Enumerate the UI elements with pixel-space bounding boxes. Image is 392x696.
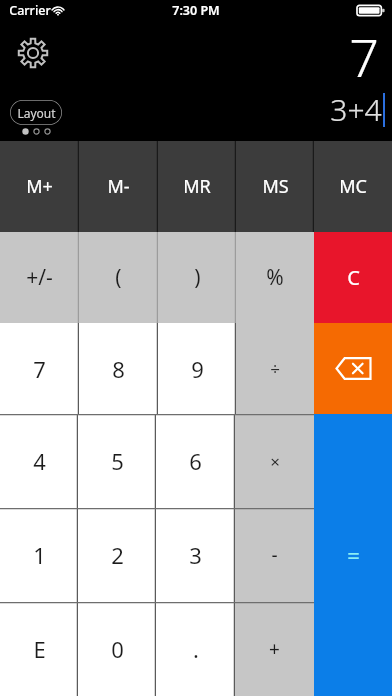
button[interactable]: 9 <box>158 323 236 414</box>
staticText: 7 <box>349 21 379 92</box>
staticText: Layout <box>17 105 56 121</box>
staticText: Carrier <box>9 2 51 19</box>
button[interactable]: = <box>314 414 392 696</box>
staticText: C <box>347 264 360 291</box>
staticText: 6 <box>189 446 202 476</box>
staticText: % <box>266 263 284 292</box>
staticText: - <box>271 542 278 568</box>
staticText: 7:30 PM <box>172 2 220 19</box>
button[interactable]: 0 <box>78 602 156 696</box>
button[interactable]: +/- <box>0 232 79 323</box>
button[interactable]: Backspace <box>314 323 392 414</box>
button[interactable]: E <box>0 602 78 696</box>
button[interactable]: 3 <box>156 508 235 602</box>
button[interactable]: Settings <box>12 32 54 74</box>
staticText: 5 <box>111 446 124 476</box>
staticText: ) <box>194 263 201 292</box>
button[interactable]: MS <box>236 141 314 232</box>
button[interactable]: ( <box>79 232 158 323</box>
staticText: 8 <box>112 354 125 384</box>
staticText: × <box>270 450 280 473</box>
staticText: 2 <box>111 540 124 570</box>
button[interactable]: M- <box>79 141 158 232</box>
staticText: 9 <box>191 354 204 384</box>
button[interactable]: . <box>156 602 235 696</box>
button[interactable]: 1 <box>0 508 78 602</box>
button[interactable]: 5 <box>78 414 156 508</box>
button[interactable]: 4 <box>0 414 78 508</box>
button[interactable]: + <box>235 602 314 696</box>
staticText: +/- <box>26 263 53 292</box>
button[interactable]: ÷ <box>236 323 314 414</box>
staticText: 3 <box>189 540 202 570</box>
staticText: MR <box>183 174 211 199</box>
button[interactable]: MR <box>158 141 236 232</box>
staticText: 7 <box>33 354 46 384</box>
button[interactable]: 8 <box>79 323 158 414</box>
button[interactable]: - <box>235 508 314 602</box>
staticText: 3+4 <box>330 89 382 130</box>
staticText: M- <box>107 174 130 199</box>
staticText: M+ <box>26 174 53 199</box>
button[interactable]: % <box>236 232 314 323</box>
staticText: 4 <box>33 446 46 476</box>
button[interactable]: 6 <box>156 414 235 508</box>
staticText: = <box>347 540 360 570</box>
staticText: ÷ <box>270 357 280 380</box>
staticText: MC <box>339 174 367 199</box>
button[interactable]: M+ <box>0 141 79 232</box>
staticText: . <box>193 634 199 664</box>
staticText: MS <box>262 174 289 199</box>
staticText: ( <box>115 263 122 292</box>
staticText: 0 <box>111 634 124 664</box>
staticText: + <box>269 636 280 662</box>
button[interactable]: ) <box>158 232 236 323</box>
button[interactable]: 2 <box>78 508 156 602</box>
button[interactable]: 7 <box>0 323 79 414</box>
button[interactable]: MC <box>314 141 392 232</box>
staticText: E <box>33 634 46 664</box>
button[interactable]: × <box>235 414 314 508</box>
staticText: 1 <box>33 540 46 570</box>
button[interactable]: Layout <box>10 100 62 125</box>
button[interactable]: C <box>314 232 392 323</box>
